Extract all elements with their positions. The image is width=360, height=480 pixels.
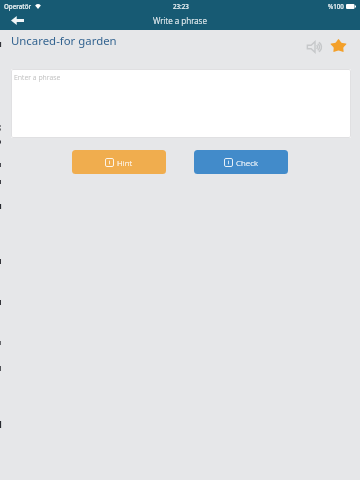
- button[interactable]: Enter a phrase: [11, 69, 351, 138]
- staticText: Operatör: [4, 2, 32, 10]
- staticText: 23:23: [173, 2, 189, 10]
- staticText: %100: [328, 2, 344, 10]
- staticText: Check: [236, 157, 258, 168]
- staticText: Hint: [117, 157, 133, 168]
- button[interactable]: Check: [194, 150, 288, 174]
- staticText: Write a phrase: [153, 15, 207, 26]
- button[interactable]: Play audio: [303, 37, 325, 57]
- staticText: Uncared-for garden: [11, 33, 117, 49]
- staticText: Enter a phrase: [14, 73, 61, 83]
- button[interactable]: Back: [5, 13, 29, 27]
- button[interactable]: Favourite: [327, 35, 349, 55]
- button[interactable]: Hint: [72, 150, 166, 174]
